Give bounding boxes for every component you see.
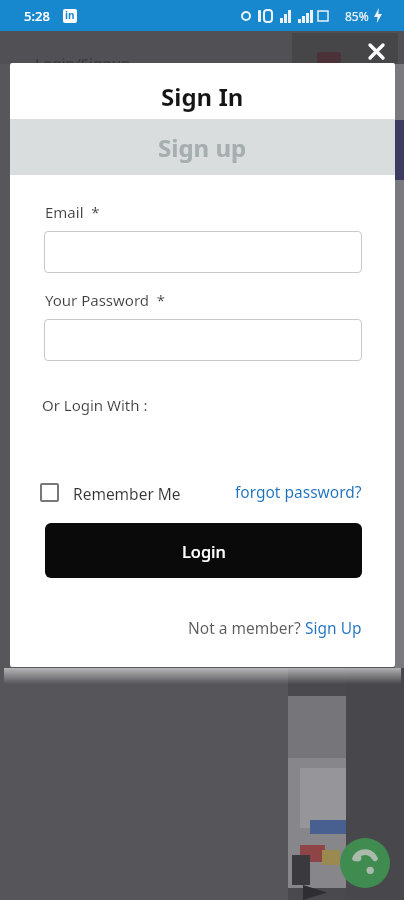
staticText: Or Login With : (42, 395, 148, 415)
button[interactable]: Sign up (10, 119, 395, 175)
button[interactable]: Sign Up (305, 617, 362, 638)
button[interactable] (44, 319, 362, 361)
staticText: in (65, 9, 75, 22)
button[interactable] (44, 231, 362, 273)
staticText: Login (182, 540, 226, 562)
staticText: Your Password * (45, 290, 166, 310)
staticText: Not a member? (188, 617, 305, 638)
button[interactable] (364, 40, 388, 62)
staticText: 85% (345, 8, 369, 24)
staticText: Sign up (158, 131, 247, 164)
staticText: Sign In (161, 80, 244, 112)
button[interactable] (40, 483, 59, 502)
staticText: 5:28 (24, 7, 50, 25)
staticText: Login/Signup (35, 53, 131, 73)
staticText: forgot password? (235, 481, 362, 502)
button[interactable] (340, 838, 390, 888)
staticText: Remember Me (73, 483, 181, 504)
button[interactable]: forgot password? (235, 481, 362, 502)
button[interactable]: Login (45, 523, 362, 578)
staticText: Sign Up (305, 617, 362, 638)
staticText: Email * (45, 202, 100, 222)
button[interactable]: Sign In (10, 80, 395, 112)
